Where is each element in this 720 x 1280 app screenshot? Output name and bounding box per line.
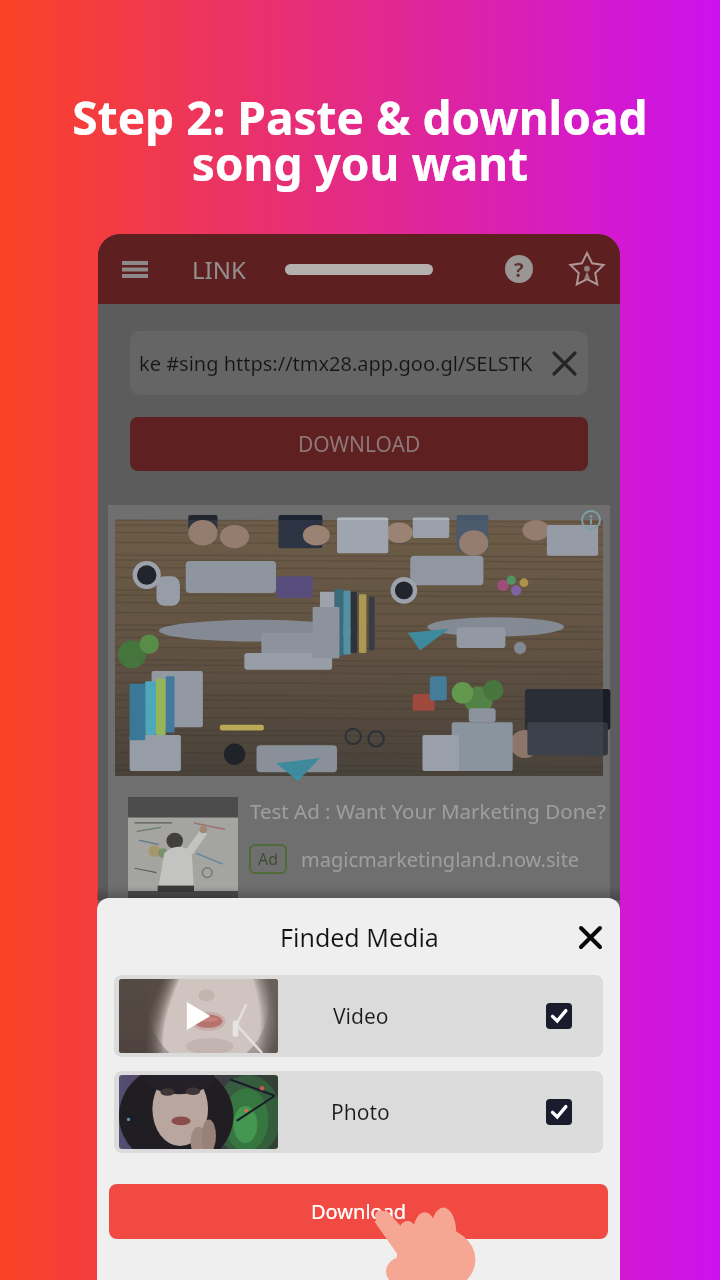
- button[interactable]: Download: [109, 1184, 608, 1239]
- button[interactable]: Photo: [114, 1071, 603, 1153]
- staticText: magicmarketingland.now.site: [301, 846, 580, 873]
- button[interactable]: Ad info: [578, 507, 604, 533]
- button[interactable]: Close: [568, 915, 612, 959]
- button[interactable]: Premium: [565, 247, 609, 291]
- button[interactable]: Help: [497, 247, 541, 291]
- button[interactable]: Clear: [547, 346, 581, 380]
- staticText: Step 2: Paste & download song you want: [72, 86, 648, 195]
- button[interactable]: Video: [114, 975, 603, 1057]
- staticText: Photo: [331, 1098, 390, 1127]
- staticText: LINK: [192, 253, 246, 286]
- staticText: Download: [311, 1198, 407, 1225]
- staticText: DOWNLOAD: [298, 430, 421, 459]
- staticText: Video: [333, 1002, 389, 1031]
- button[interactable]: Test Ad : Want Your Marketing Done?: [108, 505, 610, 905]
- staticText: Test Ad : Want Your Marketing Done?: [250, 797, 606, 825]
- button[interactable]: Menu: [111, 245, 159, 293]
- button[interactable]: DOWNLOAD: [130, 417, 588, 471]
- staticText: ke #sing https://tmx28.app.goo.gl/SELSTK: [139, 350, 547, 377]
- button[interactable]: ke #sing https://tmx28.app.goo.gl/SELSTK: [130, 331, 588, 395]
- staticText: ?: [514, 256, 524, 283]
- staticText: Finded Media: [280, 920, 439, 954]
- staticText: Ad: [258, 848, 279, 870]
